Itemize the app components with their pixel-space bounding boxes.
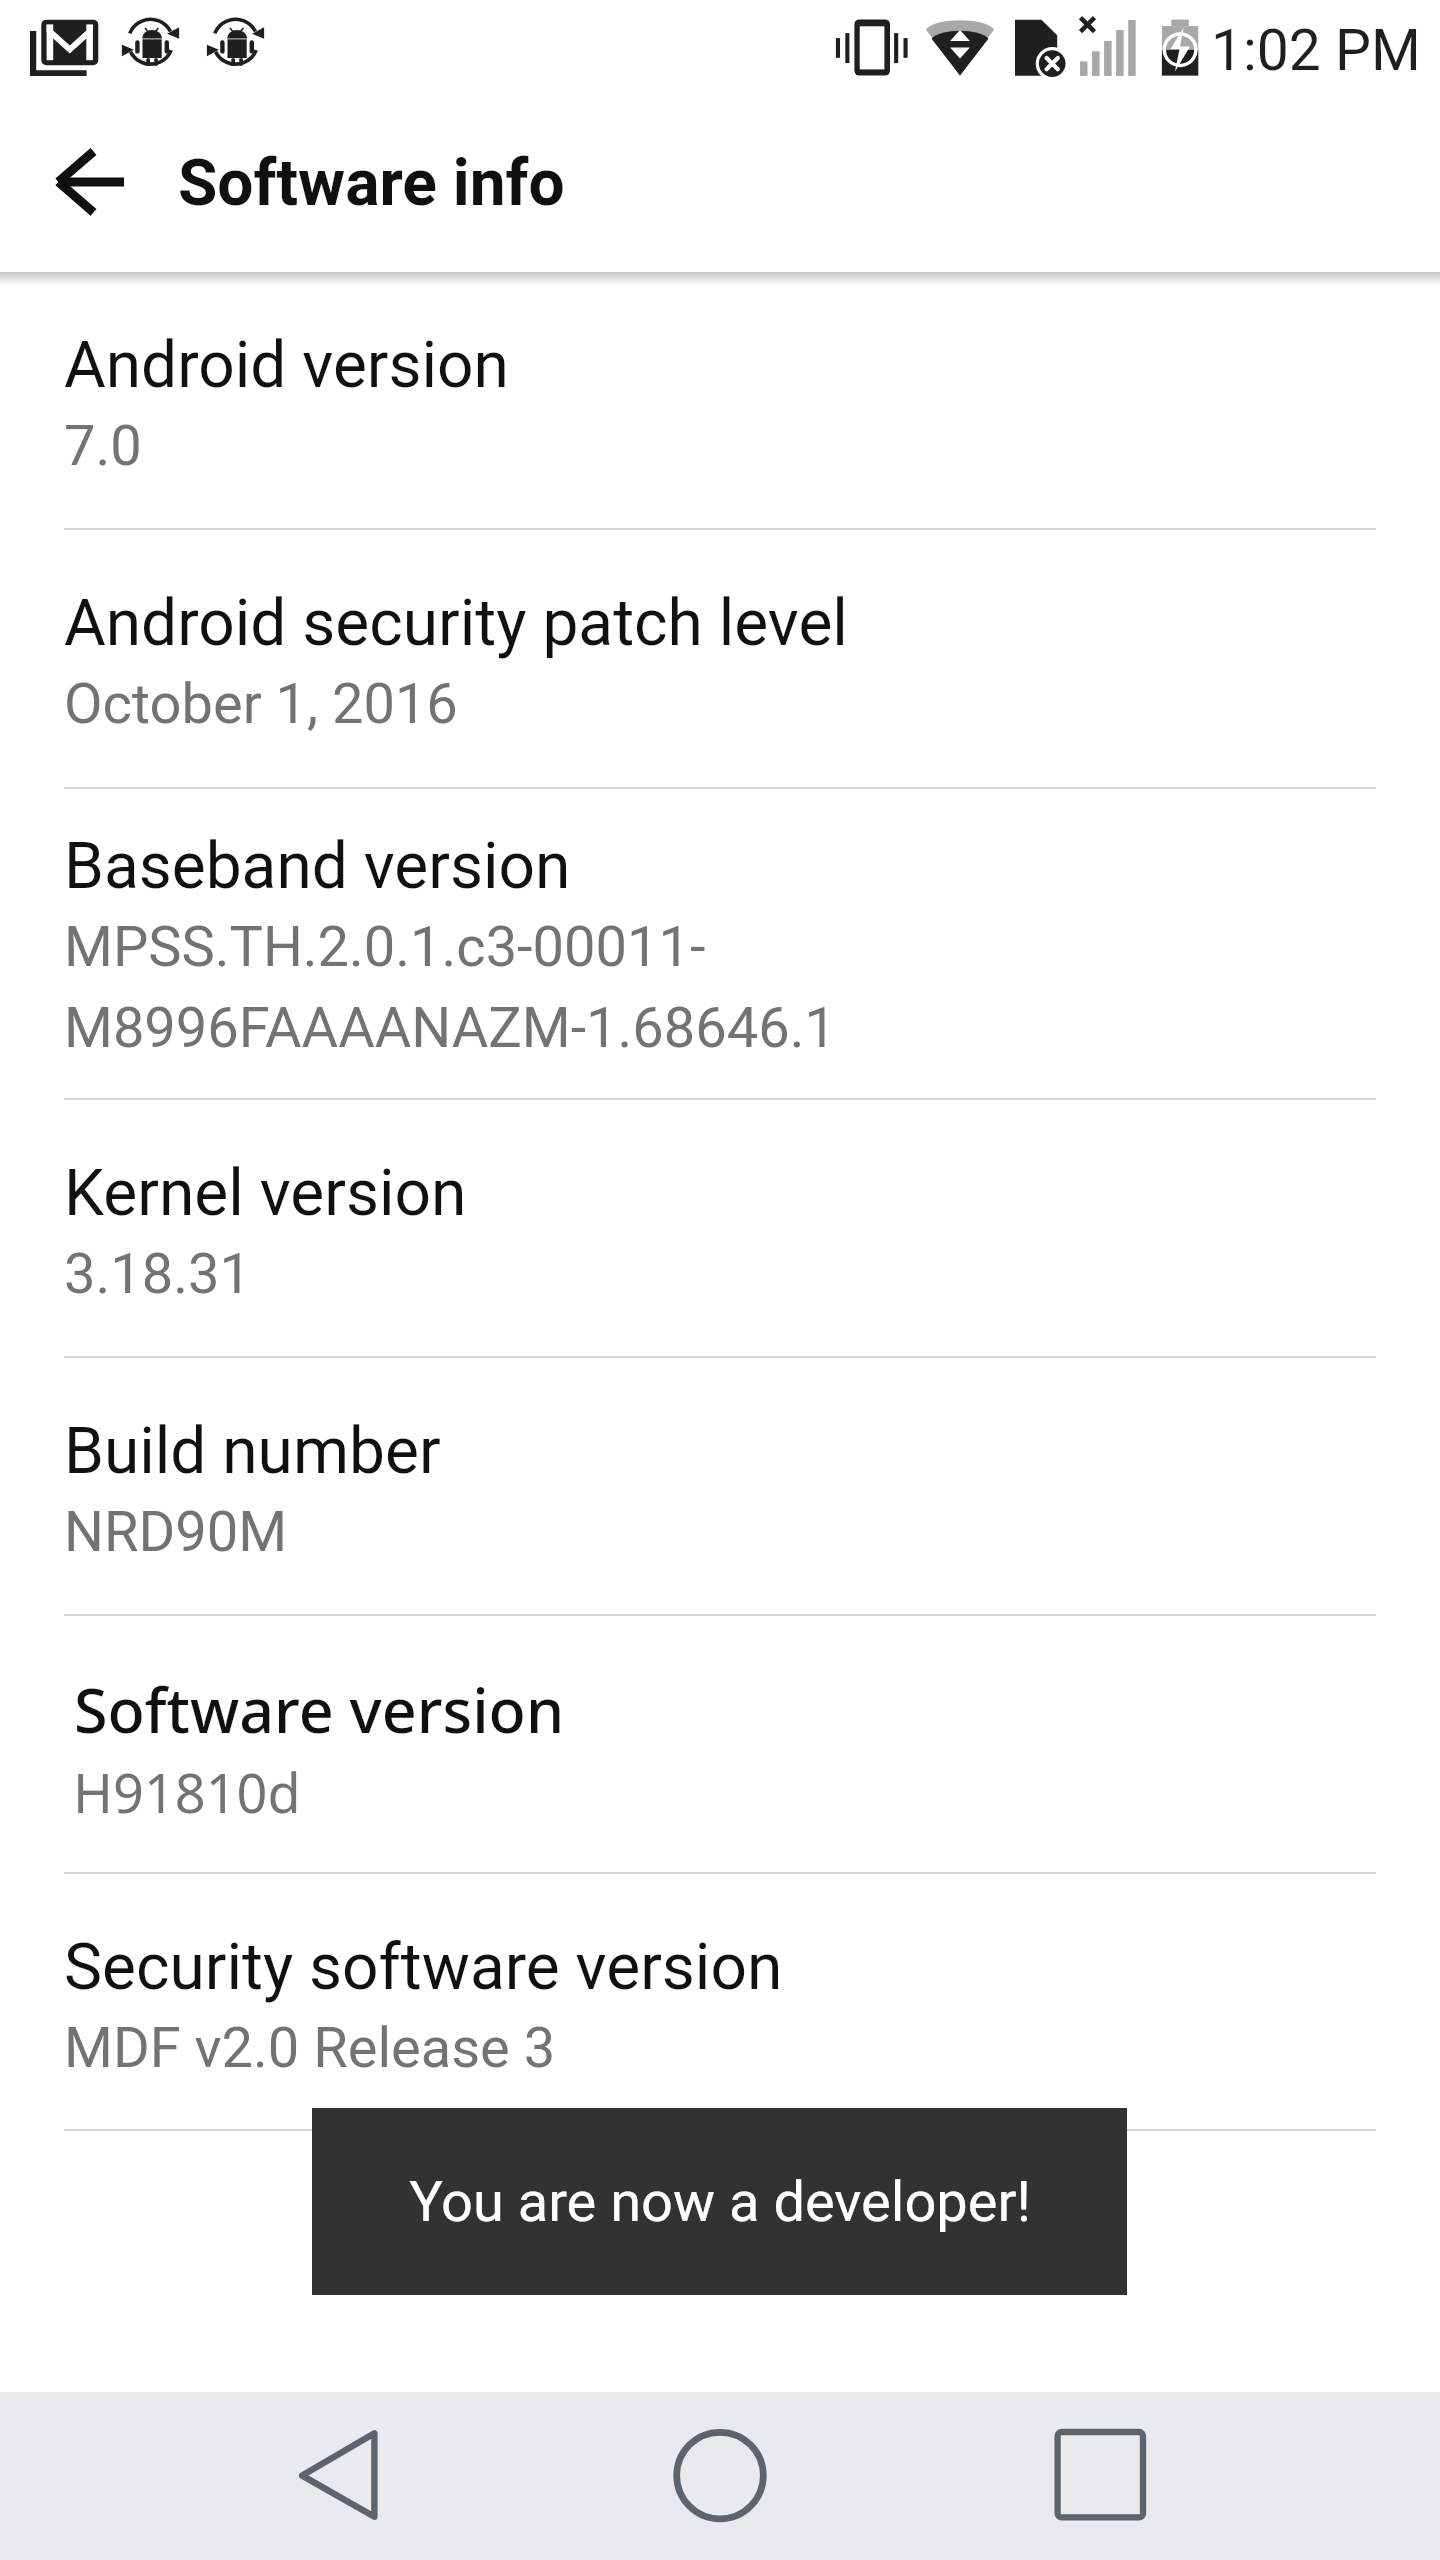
staticText: 7.0	[64, 413, 142, 479]
button[interactable]: Back	[258, 2392, 418, 2560]
staticText: Software version	[74, 1668, 565, 1751]
button[interactable]: Software version	[0, 1616, 1440, 1874]
staticText: You are now a developer!	[409, 2169, 1031, 2235]
staticText: 3.18.31	[64, 1241, 251, 1307]
staticText: H91810d	[73, 1755, 301, 1829]
staticText: Build number	[64, 1414, 441, 1489]
staticText: Software info	[178, 146, 565, 221]
staticText: October 1, 2016	[64, 671, 458, 737]
button[interactable]: Security software version	[0, 1874, 1440, 2131]
staticText: Baseband version	[64, 829, 571, 904]
staticText: 1:02 PM	[1211, 17, 1421, 84]
staticText: Android security patch level	[64, 586, 848, 661]
button[interactable]: Navigate up	[26, 118, 152, 244]
button[interactable]: Build number	[0, 1358, 1440, 1616]
button[interactable]: Home	[640, 2392, 800, 2560]
button[interactable]: Android version	[0, 272, 1440, 530]
button[interactable]: Android security patch level	[0, 530, 1440, 789]
button[interactable]: Baseband version	[0, 789, 1440, 1100]
staticText: M8996FAAAANAZM-1.68646.1	[64, 995, 836, 1061]
button[interactable]: Kernel version	[0, 1100, 1440, 1358]
staticText: MPSS.TH.2.0.1.c3-00011-	[64, 914, 706, 980]
staticText: Android version	[64, 328, 509, 403]
staticText: NRD90M	[64, 1499, 288, 1565]
staticText: MDF v2.0 Release 3	[64, 2015, 556, 2081]
button[interactable]: Recent apps	[1020, 2392, 1180, 2560]
staticText: Security software version	[64, 1930, 783, 2005]
staticText: Kernel version	[64, 1156, 467, 1231]
